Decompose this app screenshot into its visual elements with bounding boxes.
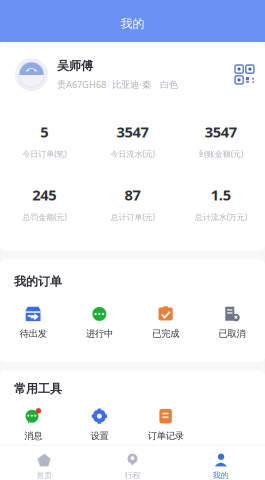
button[interactable]: 已完成 [132,306,199,339]
staticText: 到账金额(元) [199,148,243,159]
staticText: 3547 [116,122,148,141]
staticText: 首页 [36,470,52,480]
staticText: 订单记录 [148,430,184,442]
staticText: 总计流水(万元) [195,212,247,222]
staticText: 待出发 [20,328,47,339]
staticText: 总罚金额(元) [22,212,66,222]
staticText: 3547 [205,122,237,141]
button[interactable]: 首页 [0,453,88,480]
staticText: 我的 [120,16,144,31]
staticText: 已取消 [218,328,245,339]
button[interactable]: 二维码 [235,65,254,84]
staticText: 87 [124,185,140,205]
staticText: 5 [40,122,48,141]
staticText: 贵A67GH68 比亚迪·秦 白色 [57,78,178,91]
staticText: 今日流水(元) [110,148,154,159]
button[interactable]: 待出发 [0,306,66,339]
staticText: 行程 [124,470,140,480]
staticText: 总计订单(元) [110,212,154,222]
staticText: 常用工具 [14,381,62,396]
button[interactable]: 订单记录 [132,408,199,442]
staticText: 设置 [90,430,108,442]
button[interactable]: 设置 [66,408,132,442]
button[interactable]: 消息 [0,408,66,442]
button[interactable]: 进行中 [66,306,132,339]
staticText: 吴师傅 [57,58,93,73]
button[interactable]: 行程 [88,453,177,480]
staticText: 我的 [213,470,229,480]
staticText: 245 [32,185,56,205]
button[interactable]: 已取消 [199,306,265,339]
staticText: 已完成 [152,328,179,339]
staticText: 1.5 [211,185,231,205]
staticText: 进行中 [86,328,113,339]
staticText: 今日订单(笔) [22,148,66,159]
staticText: 消息 [24,430,42,442]
staticText: 我的订单 [14,274,62,289]
button[interactable]: 我的 [177,453,265,480]
